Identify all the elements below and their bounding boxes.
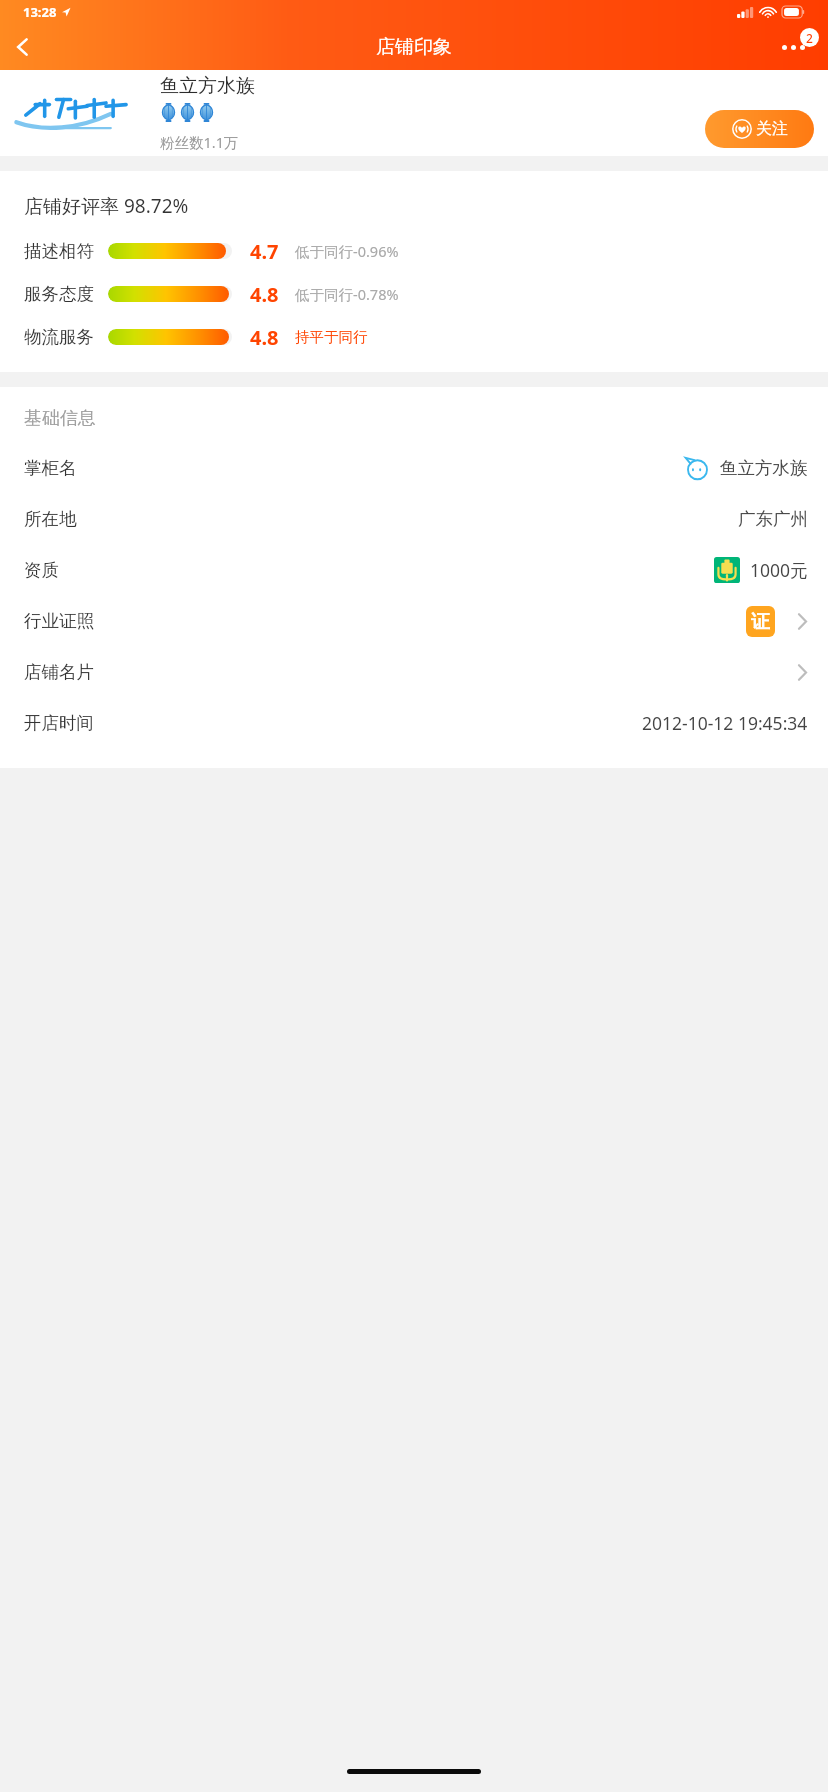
staticText: 描述相符: [24, 240, 94, 262]
staticText: 店铺印象: [376, 35, 452, 59]
button[interactable]: More options: [770, 24, 816, 70]
staticText: 店铺好评率 98.72%: [24, 193, 189, 219]
staticText: 低于同行-0.78%: [295, 284, 399, 304]
staticText: 店铺名片: [24, 661, 94, 683]
staticText: 4.8: [250, 281, 279, 307]
button[interactable]: Back: [0, 24, 46, 70]
staticText: 所在地: [24, 508, 77, 530]
staticText: 鱼立方水族: [720, 457, 808, 479]
staticText: 物流服务: [24, 326, 94, 348]
staticText: 证: [751, 610, 770, 634]
staticText: 4.8: [250, 324, 279, 350]
button[interactable]: 店铺名片: [0, 654, 828, 690]
staticText: 服务态度: [24, 283, 94, 305]
staticText: 开店时间: [24, 712, 94, 734]
button[interactable]: 关注: [705, 110, 814, 148]
staticText: 鱼立方水族: [160, 74, 255, 98]
staticText: 粉丝数1.1万: [160, 132, 239, 152]
staticText: 基础信息: [24, 407, 96, 430]
staticText: 4.7: [250, 238, 279, 264]
staticText: 广东广州: [738, 508, 808, 530]
staticText: 低于同行-0.96%: [295, 241, 399, 261]
staticText: 资质: [24, 559, 59, 581]
staticText: 持平于同行: [295, 328, 368, 346]
staticText: 掌柜名: [24, 457, 77, 479]
staticText: 关注: [756, 119, 788, 139]
staticText: 2012-10-12 19:45:34: [642, 711, 808, 735]
staticText: 13:28: [23, 3, 57, 21]
staticText: 2: [806, 30, 813, 46]
staticText: 行业证照: [24, 610, 94, 632]
staticText: 1000元: [750, 558, 808, 582]
button[interactable]: 行业证照: [0, 603, 828, 639]
